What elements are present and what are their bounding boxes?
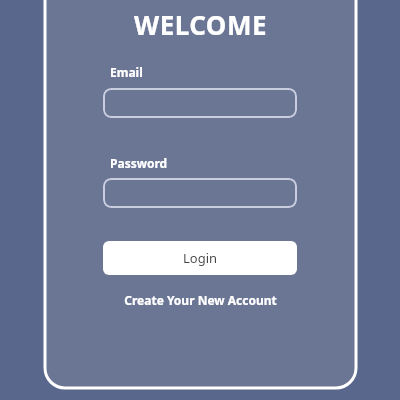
button[interactable]: Password input field xyxy=(103,178,297,208)
staticText: Email xyxy=(110,64,143,80)
button[interactable]: Create Your New Account xyxy=(103,289,297,311)
staticText: Create Your New Account xyxy=(124,292,277,308)
staticText: Password xyxy=(110,155,168,171)
staticText: WELCOME xyxy=(45,7,356,43)
button[interactable]: Email input field xyxy=(103,88,297,118)
staticText: Login xyxy=(183,249,218,267)
button[interactable]: Login xyxy=(103,241,297,275)
